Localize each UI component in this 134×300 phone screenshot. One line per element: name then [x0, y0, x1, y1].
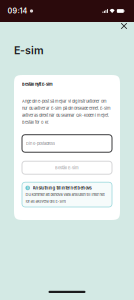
staticText: E-sim [14, 44, 44, 57]
staticText: Din e-postadress [26, 141, 55, 146]
button[interactable]: Stäng [116, 22, 132, 30]
staticText: Beställ E-sim [55, 165, 79, 170]
staticText: Anslutning till internet behövs [33, 186, 92, 191]
staticText: Du kommer att behöva vara ansluten till … [25, 192, 104, 204]
button[interactable]: Din e-postadress [22, 135, 112, 152]
button[interactable]: Beställ E-sim [22, 161, 112, 174]
staticText: 09:14 [7, 7, 27, 15]
staticText: Beställ nytt E-sim [22, 82, 53, 87]
staticText: Ange din e-post så mejlar vi dig instruk… [22, 99, 111, 125]
staticText: i [27, 185, 28, 190]
